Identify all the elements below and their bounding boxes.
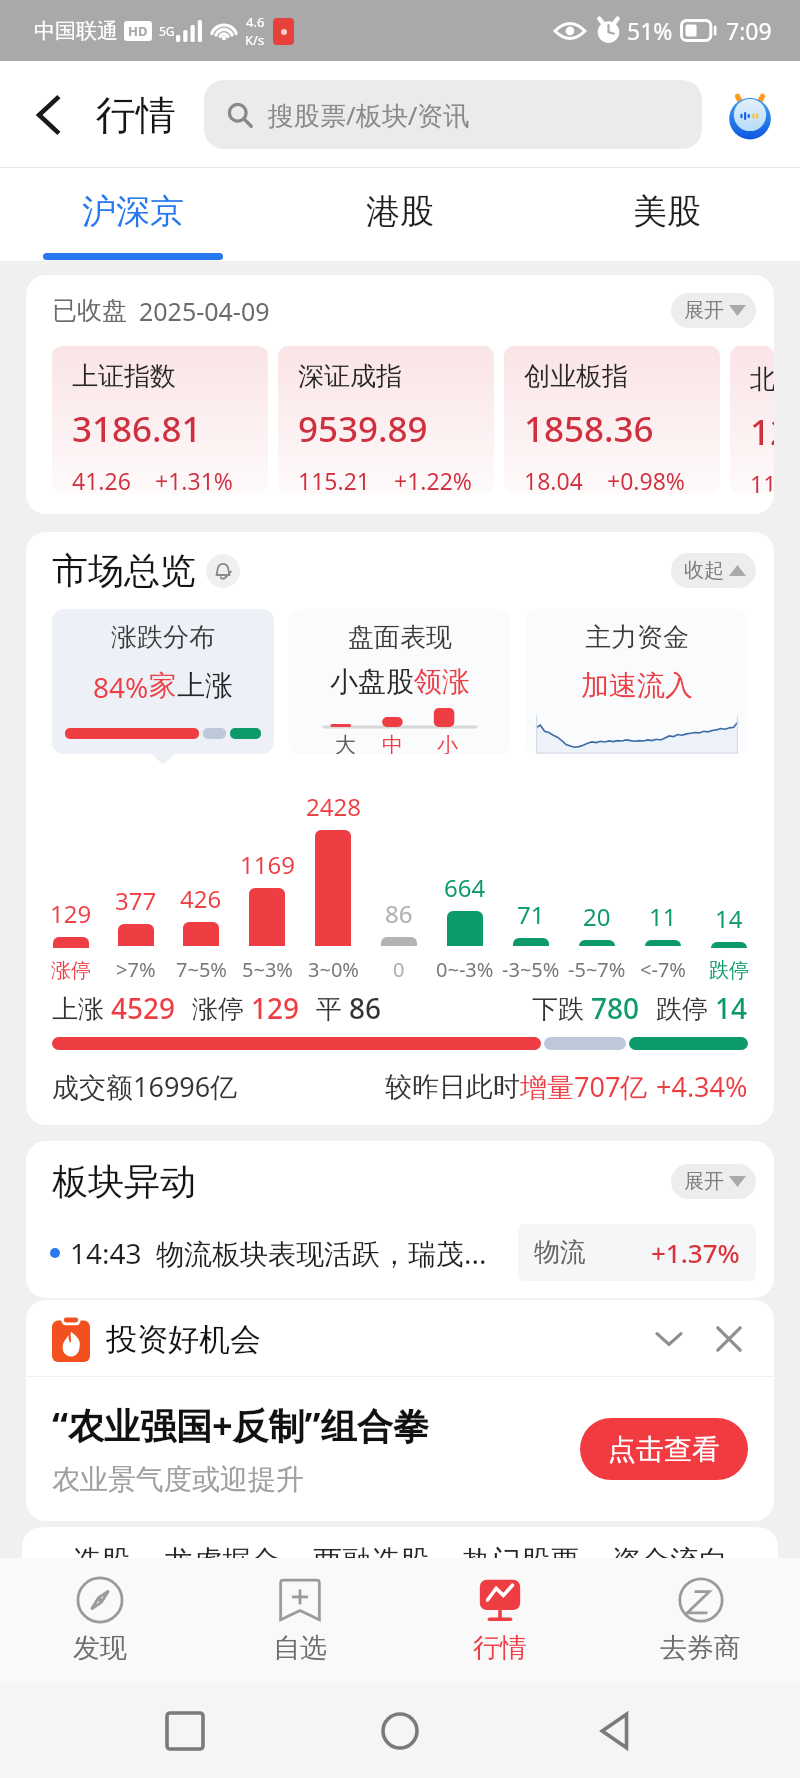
staticText: 市场总览 — [52, 548, 196, 593]
staticText: 跌停 — [656, 990, 715, 1026]
staticText: 20 — [583, 900, 611, 933]
button[interactable]: 两融选股 — [313, 1543, 429, 1558]
button[interactable]: 美股 — [533, 168, 800, 261]
button[interactable]: Alerts — [206, 554, 240, 588]
staticText: 选股 — [72, 1543, 130, 1558]
button[interactable]: 展开 — [671, 1164, 756, 1199]
staticText: 资金流向 — [612, 1543, 728, 1558]
staticText: +4.34% — [656, 1068, 748, 1105]
staticText: 较昨日此时 — [385, 1070, 520, 1104]
staticText: 加速流入 — [581, 668, 693, 703]
button[interactable]: Back — [585, 1701, 645, 1761]
button[interactable]: 上证指数 — [52, 346, 268, 494]
button[interactable]: 北证50 — [730, 346, 774, 494]
button[interactable]: 热门股票 — [463, 1543, 579, 1558]
button[interactable]: Collapse — [646, 1316, 692, 1362]
staticText: 84% — [93, 668, 149, 706]
button[interactable]: 沪深京 — [0, 168, 266, 261]
staticText: 板块异动 — [52, 1159, 196, 1204]
staticText: 盘面表现 — [348, 621, 452, 654]
staticText: 创业板指 — [524, 360, 628, 393]
staticText: 成交额16996亿 — [52, 1068, 238, 1105]
staticText: 中国联通 — [34, 18, 118, 44]
button[interactable]: 选股 — [72, 1543, 130, 1558]
staticText: 下跌 — [532, 990, 591, 1026]
staticText: 664 — [444, 871, 486, 904]
staticText: +1.37% — [651, 1235, 740, 1270]
staticText: 7~5% — [176, 956, 227, 983]
staticText: 热门股票 — [463, 1543, 579, 1558]
staticText: 涨跌分布 — [111, 621, 215, 654]
staticText: 0 — [393, 956, 405, 983]
staticText: 展开 — [684, 1169, 724, 1194]
button[interactable]: Close — [706, 1316, 752, 1362]
button[interactable]: Back — [26, 92, 72, 138]
staticText: 北证50 — [750, 360, 774, 396]
staticText: 深证成指 — [298, 360, 402, 393]
button[interactable]: 自选 — [200, 1558, 400, 1683]
staticText: 大 — [335, 732, 356, 754]
button[interactable]: 龙虎掘金 — [164, 1543, 280, 1558]
staticText: 112 — [750, 468, 774, 494]
staticText: 0~-3% — [436, 956, 494, 983]
staticText: 沪深京 — [82, 190, 184, 233]
staticText: 上证指数 — [72, 360, 176, 393]
staticText: <-7% — [640, 956, 686, 983]
staticText: +1.22% — [394, 465, 472, 494]
button[interactable]: 点击查看 — [580, 1418, 748, 1480]
staticText: HD — [128, 22, 148, 40]
staticText: 收起 — [684, 558, 724, 583]
staticText: 51% — [627, 15, 673, 46]
button[interactable]: 收起 — [671, 553, 756, 588]
staticText: 两融选股 — [313, 1543, 429, 1558]
staticText: “农业强国+反制”组合拳 — [52, 1401, 429, 1450]
staticText: 平 — [316, 990, 349, 1026]
button[interactable]: Home — [370, 1701, 430, 1761]
staticText: -5~7% — [568, 956, 626, 983]
staticText: 行情 — [96, 90, 176, 140]
staticText: 1858.36 — [524, 405, 654, 453]
button[interactable]: 行情 — [400, 1558, 600, 1683]
button[interactable]: 发现 — [0, 1558, 200, 1683]
staticText: 涨停 — [192, 990, 251, 1026]
staticText: 展开 — [684, 298, 724, 323]
staticText: 377 — [115, 884, 157, 917]
staticText: 14 — [715, 902, 743, 935]
staticText: -3~5% — [502, 956, 560, 983]
staticText: 上涨 — [177, 668, 233, 703]
staticText: 家 — [149, 668, 177, 703]
staticText: 发现 — [73, 1631, 127, 1665]
button[interactable]: Recents — [155, 1701, 215, 1761]
staticText: 18.04 — [524, 465, 583, 494]
button[interactable]: 资金流向 — [612, 1543, 728, 1558]
staticText: >7% — [116, 956, 156, 983]
staticText: 115.21 — [298, 465, 370, 494]
button[interactable]: 创业板指 — [504, 346, 720, 494]
button[interactable]: 主力资金 — [525, 609, 748, 754]
button[interactable]: 港股 — [266, 168, 533, 261]
staticText: 龙虎掘金 — [164, 1543, 280, 1558]
staticText: 小 — [437, 732, 458, 754]
staticText: 中 — [382, 732, 403, 754]
staticText: 1169 — [240, 848, 295, 881]
staticText: 上涨 — [52, 990, 111, 1026]
staticText: 129 — [50, 897, 92, 930]
button[interactable]: AI assistant — [718, 83, 782, 147]
staticText: 4.6 — [246, 13, 265, 31]
button[interactable]: 深证成指 — [278, 346, 494, 494]
staticText: K/s — [245, 31, 265, 49]
button[interactable]: 展开 — [671, 293, 756, 328]
staticText: 小盘股 — [330, 664, 414, 699]
staticText: 美股 — [633, 190, 701, 233]
button[interactable]: 去券商 — [600, 1558, 800, 1683]
button[interactable]: 盘面表现 — [288, 609, 511, 754]
button[interactable]: 14:43 — [50, 1224, 756, 1281]
staticText: +1.31% — [155, 465, 233, 494]
button[interactable]: 搜股票/板块/资讯 — [204, 80, 702, 149]
staticText: 71 — [517, 898, 545, 931]
staticText: 物流板块表现活跃，瑞茂... — [156, 1234, 487, 1272]
staticText: 涨停 — [51, 958, 91, 983]
staticText: 2025-04-09 — [139, 294, 270, 328]
staticText: 去券商 — [660, 1631, 741, 1665]
button[interactable]: 涨跌分布 — [52, 609, 274, 754]
